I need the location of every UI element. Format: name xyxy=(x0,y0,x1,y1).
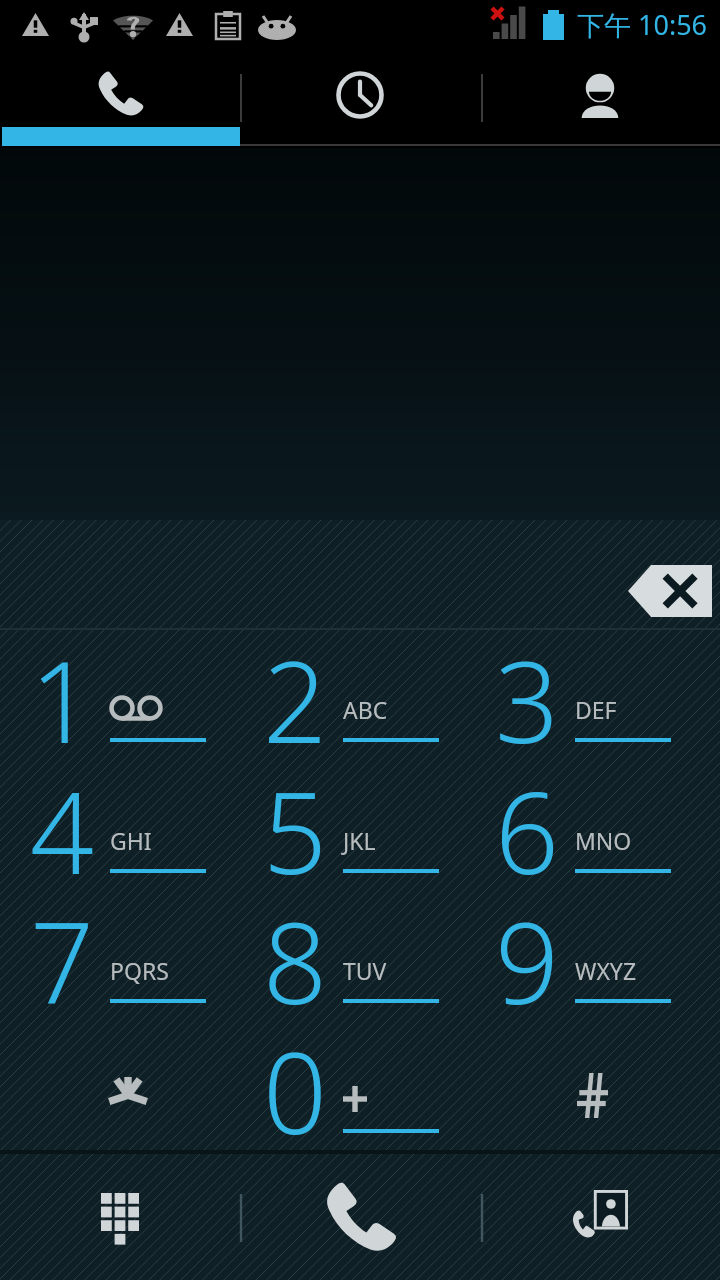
button[interactable] xyxy=(9,642,241,772)
staticText: 1 xyxy=(30,623,94,776)
staticText: GHI xyxy=(110,825,152,856)
staticText: 7 xyxy=(30,884,94,1037)
staticText: 8 xyxy=(263,884,327,1037)
staticText: PQRS xyxy=(110,955,169,986)
button[interactable] xyxy=(242,773,474,903)
staticText: 3 xyxy=(495,623,559,776)
staticText: 5 xyxy=(263,754,327,907)
button[interactable]: Pound xyxy=(474,1033,706,1163)
button[interactable]: Star xyxy=(9,1033,241,1163)
staticText: 6 xyxy=(495,754,559,907)
button[interactable]: Delete xyxy=(628,565,712,617)
button[interactable] xyxy=(242,1033,474,1163)
staticText: 4 xyxy=(30,754,94,907)
staticText: WXYZ xyxy=(575,955,637,986)
button[interactable]: Contacts xyxy=(480,50,720,140)
staticText: MNO xyxy=(575,825,632,856)
button[interactable] xyxy=(9,773,241,903)
staticText: 下午 10:56 xyxy=(577,6,708,43)
button[interactable] xyxy=(242,642,474,772)
staticText: 2 xyxy=(263,623,327,776)
button[interactable]: Dialpad xyxy=(82,1180,158,1256)
button[interactable] xyxy=(474,903,706,1033)
staticText: ABC xyxy=(343,694,388,725)
staticText: 0 xyxy=(263,1014,327,1167)
button[interactable]: Add to contacts xyxy=(562,1178,638,1254)
button[interactable]: Call xyxy=(310,1178,410,1260)
button[interactable] xyxy=(9,903,241,1033)
button[interactable] xyxy=(474,642,706,772)
staticText: 9 xyxy=(495,884,559,1037)
button[interactable] xyxy=(474,773,706,903)
staticText: TUV xyxy=(343,955,387,986)
button[interactable]: Call history xyxy=(240,50,480,140)
staticText: DEF xyxy=(575,694,617,725)
button[interactable] xyxy=(242,903,474,1033)
staticText: JKL xyxy=(343,825,376,856)
button[interactable]: Phone keypad xyxy=(0,50,240,140)
